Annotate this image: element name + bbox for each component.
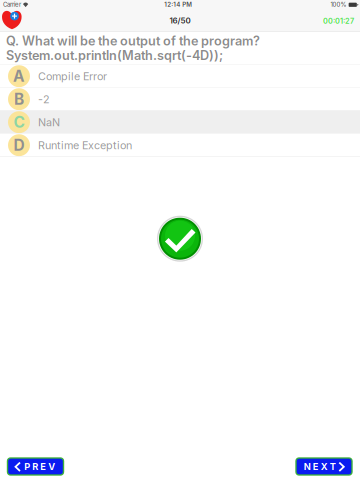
button[interactable]: P R E V	[7, 458, 63, 475]
staticText: Compile Error	[38, 70, 107, 83]
staticText: NaN	[38, 116, 60, 129]
staticText: B	[14, 90, 24, 108]
staticText: P R E V	[24, 461, 55, 472]
staticText: 100%	[330, 1, 346, 8]
button[interactable]: B	[0, 88, 360, 111]
staticText: C	[13, 113, 24, 131]
staticText: Runtime Exception	[38, 139, 132, 152]
button[interactable]: N E X T	[296, 458, 352, 475]
button[interactable]: A	[0, 65, 360, 88]
button[interactable]: Add life	[2, 10, 22, 30]
staticText: Carrier	[3, 1, 21, 8]
staticText: N E X T	[304, 461, 336, 472]
staticText: Q. What will be the output of the progra…	[6, 33, 260, 48]
staticText: 16/50	[169, 16, 190, 25]
staticText: 12:14 PM	[164, 1, 192, 8]
staticText: D	[13, 136, 24, 154]
button[interactable]: D	[0, 134, 360, 157]
staticText: A	[13, 67, 25, 85]
staticText: 00:01:27	[323, 17, 354, 25]
staticText: -2	[38, 93, 50, 106]
button[interactable]: C	[0, 111, 360, 134]
staticText: System.out.println(Math.sqrt(-4D));	[6, 48, 223, 63]
